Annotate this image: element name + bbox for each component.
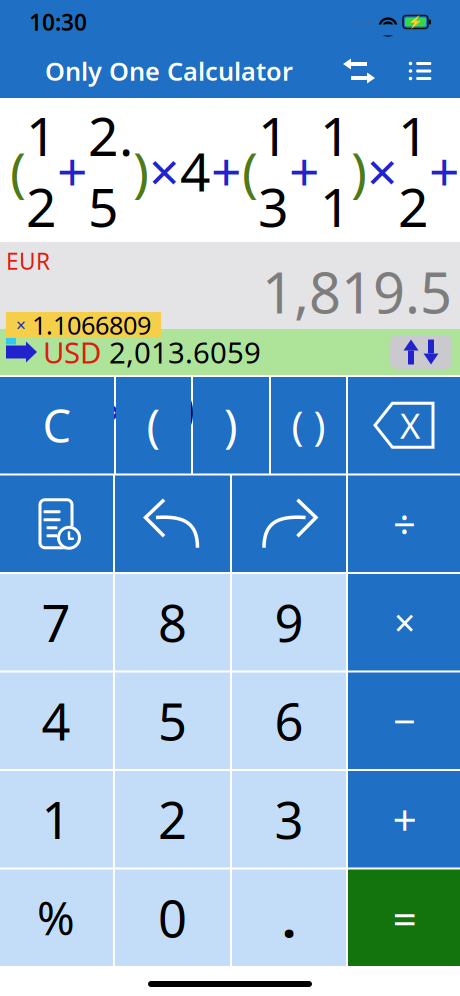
staticText: +	[103, 273, 134, 344]
staticText: 20	[427, 238, 458, 379]
staticText: 1,819.5	[262, 255, 452, 329]
staticText: 5	[158, 687, 187, 754]
staticText: =	[392, 889, 416, 946]
button[interactable]: ( )	[271, 377, 346, 473]
staticText: (	[10, 135, 26, 206]
staticText: 8	[158, 589, 187, 656]
button[interactable]: History	[0, 475, 113, 572]
staticText: C	[42, 395, 71, 455]
staticText: +	[289, 135, 320, 206]
button[interactable]: History list	[403, 51, 437, 91]
button[interactable]: )	[193, 377, 269, 473]
button[interactable]: 1	[0, 771, 113, 867]
staticText: 2.5	[88, 100, 133, 242]
staticText: ×	[165, 273, 196, 344]
staticText: 1.1066809	[32, 308, 151, 342]
staticText: ÷	[393, 497, 416, 550]
staticText: EUR	[6, 246, 50, 276]
staticText: +	[392, 791, 416, 848]
staticText: 2	[158, 786, 187, 853]
staticText: 10:30	[29, 7, 87, 37]
staticText: 10	[134, 375, 196, 446]
staticText: 6	[274, 687, 303, 754]
staticText: (	[242, 135, 258, 206]
staticText: ×	[16, 313, 26, 336]
button[interactable]: 5	[115, 672, 230, 769]
staticText: 47	[41, 375, 103, 446]
staticText: 12	[26, 100, 57, 242]
staticText: (	[146, 395, 160, 455]
button[interactable]: C	[0, 377, 114, 473]
button[interactable]: Undo	[115, 475, 230, 572]
staticText: +	[227, 273, 258, 344]
button[interactable]: Redo	[232, 475, 346, 572]
button[interactable]: ×	[348, 574, 460, 670]
button[interactable]: Delete	[348, 377, 460, 473]
button[interactable]: .	[232, 869, 346, 966]
staticText: ×	[289, 273, 320, 344]
staticText: 2,013.6059	[109, 332, 261, 371]
staticText: 4	[41, 687, 70, 754]
staticText: 3	[134, 273, 165, 344]
staticText: ( )	[291, 399, 325, 452]
staticText: 7	[41, 589, 70, 656]
button[interactable]: 8	[115, 574, 230, 670]
button[interactable]: 7	[0, 574, 113, 670]
staticText: +	[429, 135, 460, 206]
staticText: ×	[149, 135, 180, 206]
button[interactable]: ÷	[348, 475, 460, 572]
staticText: 3	[274, 786, 303, 853]
button[interactable]: +	[348, 771, 460, 867]
button[interactable]: 6	[232, 672, 346, 769]
staticText: +	[196, 375, 227, 446]
button[interactable]: Reverse conversion direction	[390, 335, 452, 369]
button[interactable]: 2	[115, 771, 230, 867]
staticText: X	[400, 402, 420, 448]
staticText: )	[133, 135, 149, 206]
button[interactable]: −	[348, 672, 460, 769]
staticText: ×	[41, 273, 72, 344]
staticText: 12	[72, 238, 103, 379]
staticText: 4	[196, 273, 227, 344]
button[interactable]: (	[116, 377, 191, 473]
staticText: ×	[367, 135, 398, 206]
staticText: %	[37, 888, 75, 948]
button[interactable]: %	[0, 869, 113, 966]
staticText: 60	[258, 238, 289, 379]
staticText: 4	[180, 135, 211, 206]
staticText: 11	[320, 100, 351, 242]
staticText: ⚡	[408, 15, 423, 29]
staticText: +	[396, 273, 427, 344]
staticText: 9	[274, 589, 303, 656]
button[interactable]: 4	[0, 672, 113, 769]
staticText: )	[351, 135, 367, 206]
staticText: )	[224, 395, 238, 455]
staticText: ×	[394, 597, 415, 647]
staticText: 1	[41, 786, 70, 853]
button[interactable]: 3	[232, 771, 346, 867]
button[interactable]: 0	[115, 869, 230, 966]
staticText: USD	[43, 332, 101, 371]
staticText: Only One Calculator	[45, 54, 293, 88]
staticText: +	[10, 375, 41, 446]
staticText: −	[393, 694, 416, 747]
button[interactable]: Swap currencies	[339, 51, 379, 91]
button[interactable]: =	[348, 869, 460, 966]
staticText: 12	[398, 100, 429, 242]
staticText: 0	[158, 884, 187, 951]
staticText: 13	[258, 100, 289, 242]
staticText: +	[57, 135, 88, 206]
staticText: 5.5	[227, 375, 303, 446]
button[interactable]: 9	[232, 574, 346, 670]
staticText: ×	[103, 375, 134, 446]
staticText: 23	[10, 238, 41, 379]
staticText: +	[211, 135, 242, 206]
staticText: 11.5	[320, 238, 396, 379]
staticText: .	[282, 884, 296, 951]
